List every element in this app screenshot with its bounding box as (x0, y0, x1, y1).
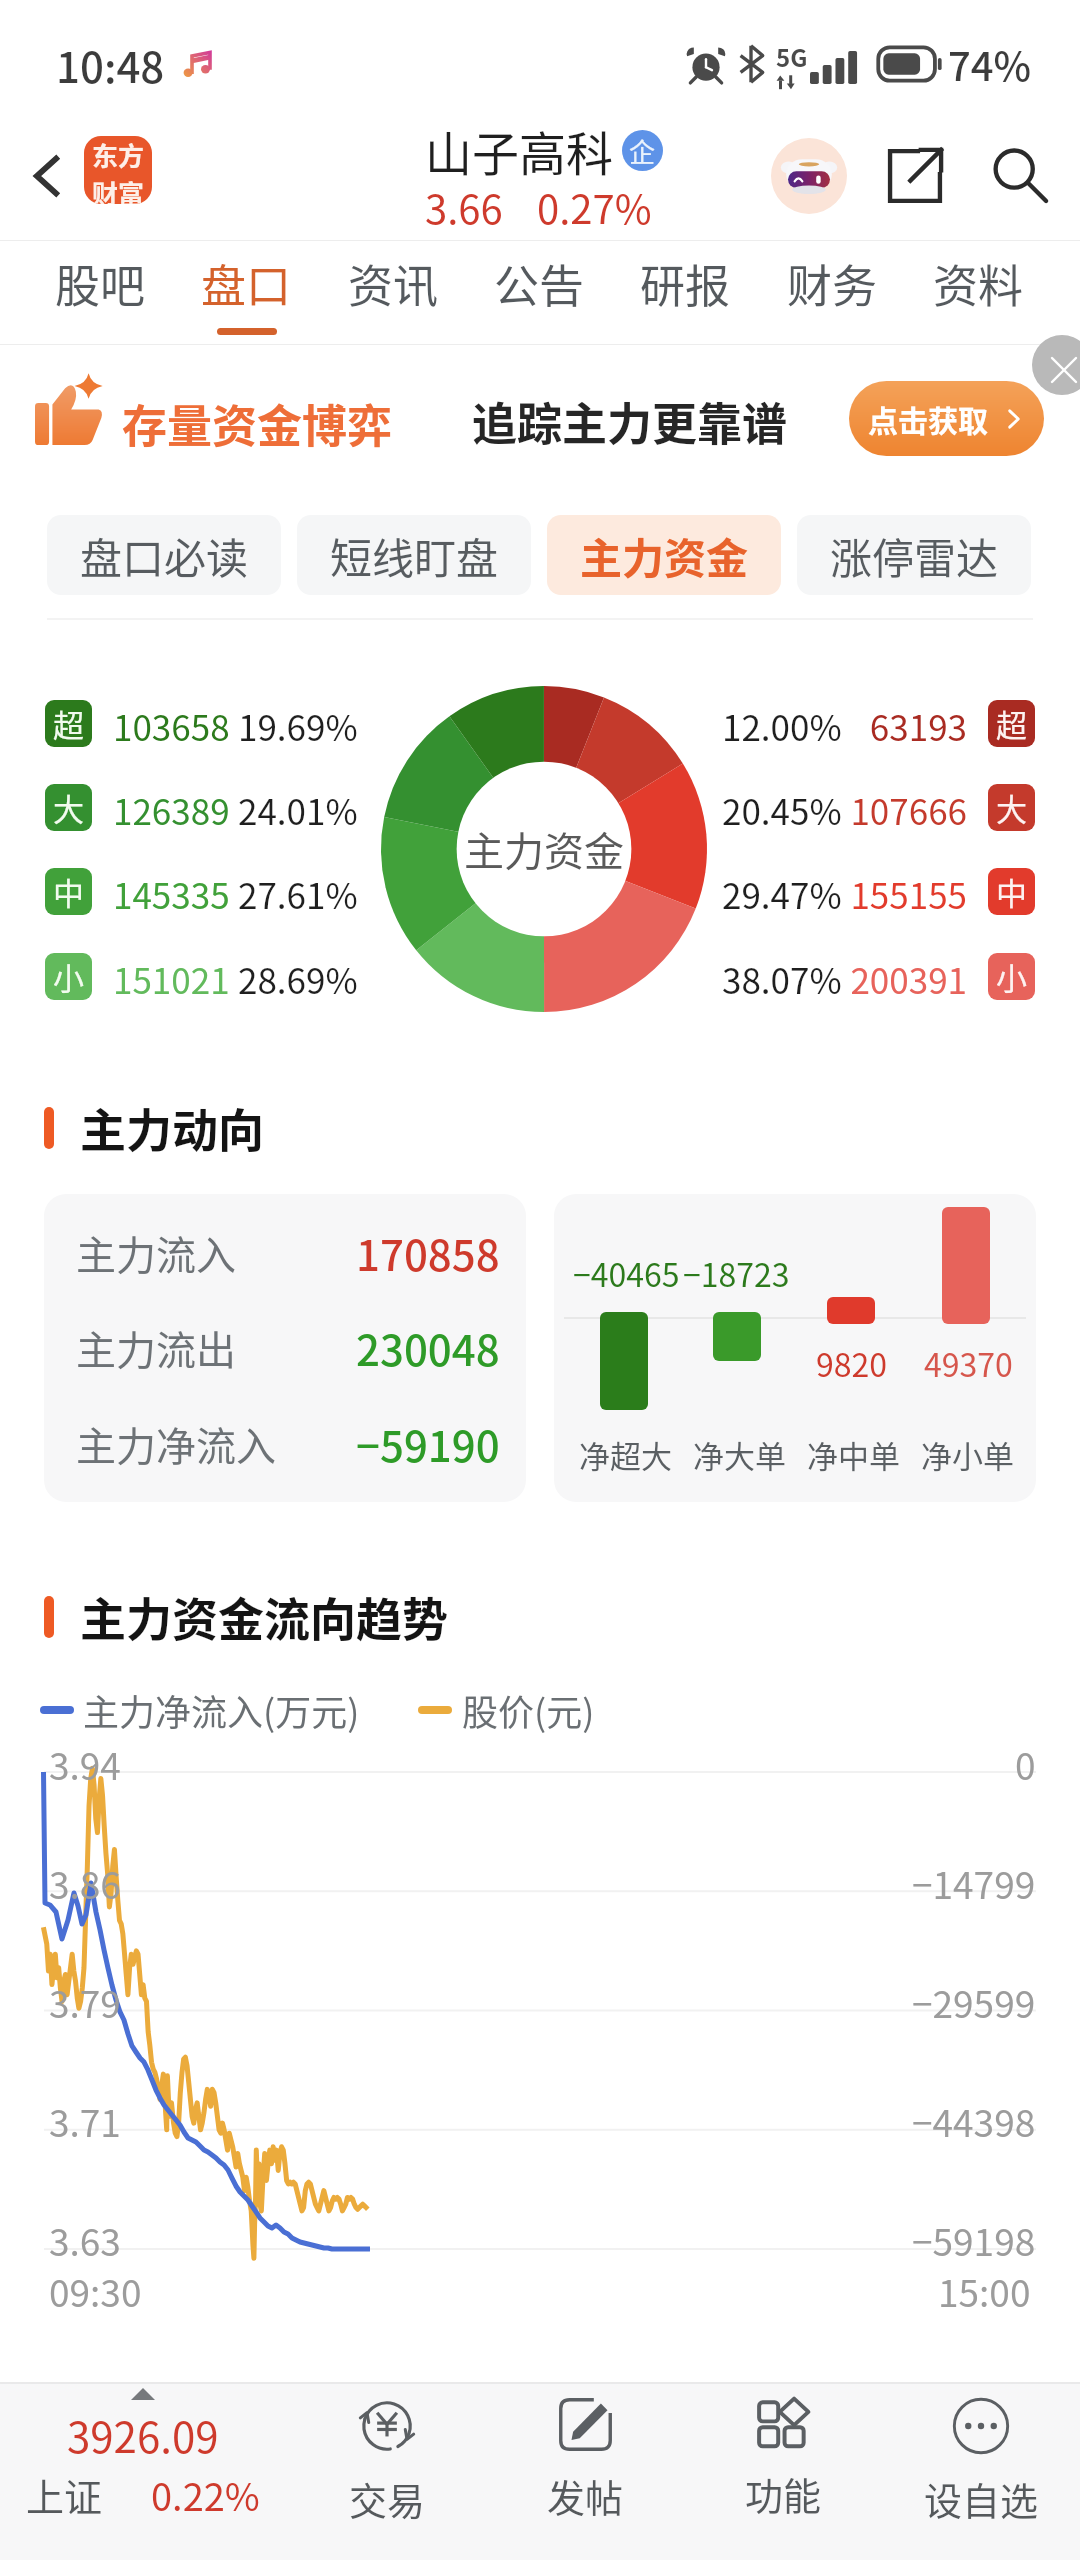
button[interactable]: Back (14, 110, 78, 241)
staticText: 主力资金流向趋势 (80, 1583, 448, 1650)
staticText: 涨停雷达 (830, 525, 999, 586)
staticText: 12.00% (722, 700, 842, 747)
button[interactable]: 发帖 (486, 2382, 684, 2560)
staticText: 09:30 (49, 2264, 142, 2318)
staticText: 主力净流入 (76, 1415, 276, 1473)
button[interactable]: 3926.09 (0, 2388, 286, 2560)
staticText: 107666 (843, 784, 967, 831)
staticText: 20.45% (722, 784, 842, 831)
staticText: 9820 (816, 1340, 888, 1386)
staticText: 大 (53, 785, 84, 830)
staticText: 3.79 (49, 1975, 121, 2029)
staticText: −40465 (573, 1250, 680, 1296)
button[interactable]: Close ad (1032, 335, 1080, 395)
staticText: 3.94 (49, 1737, 121, 1791)
staticText: 74% (948, 35, 1032, 93)
staticText: 3.71 (49, 2094, 121, 2148)
staticText: 净大单 (693, 1432, 786, 1477)
button[interactable]: East Money (84, 136, 152, 204)
staticText: 功能 (745, 2466, 822, 2521)
staticText: 主力流出 (76, 1319, 236, 1377)
button[interactable]: 盘口 (201, 241, 292, 345)
button[interactable]: 12.00% (0, 700, 1035, 747)
staticText: 38.07% (722, 953, 842, 1000)
staticText: 0.27% (537, 178, 652, 236)
staticText: 资讯 (348, 251, 439, 316)
button[interactable]: 短线盯盘 (297, 515, 531, 595)
staticText: 28.69% (238, 953, 358, 1000)
button[interactable]: 29.47% (0, 868, 1035, 915)
staticText: 上证 (26, 2467, 103, 2522)
button[interactable]: 20.45% (0, 784, 1035, 831)
staticText: 29.47% (722, 868, 842, 915)
button[interactable]: 设自选 (882, 2382, 1080, 2560)
staticText: 存量资金博弈 (122, 391, 393, 456)
button[interactable]: 中 (45, 868, 358, 915)
staticText: 东方 (92, 136, 145, 174)
staticText: 盘口 (201, 251, 292, 316)
staticText: 155155 (843, 868, 967, 915)
staticText: 49370 (924, 1340, 1013, 1386)
staticText: 3.86 (49, 1856, 121, 1910)
staticText: −29599 (912, 1975, 1036, 2029)
staticText: 中 (996, 869, 1027, 914)
staticText: 资料 (933, 251, 1024, 316)
button[interactable]: 涨停雷达 (797, 515, 1031, 595)
button[interactable]: 点击获取 (849, 381, 1044, 456)
staticText: 山子高科 (425, 116, 613, 184)
staticText: 0.22% (151, 2467, 260, 2522)
staticText: 5G (776, 39, 808, 74)
staticText: 超 (53, 701, 84, 746)
staticText: −59190 (356, 1413, 500, 1474)
button[interactable]: Share (882, 143, 948, 209)
button[interactable]: 38.07% (0, 953, 1035, 1000)
button[interactable]: 资料 (933, 241, 1024, 345)
staticText: −18723 (683, 1250, 790, 1296)
staticText: 170858 (356, 1222, 500, 1283)
staticText: 财富 (92, 174, 145, 204)
staticText: 3.66 (425, 178, 503, 236)
staticText: 交易 (349, 2471, 426, 2526)
staticText: 145335 (113, 868, 238, 915)
staticText: 3.63 (49, 2213, 121, 2267)
staticText: 19.69% (238, 700, 358, 747)
staticText: 财务 (787, 251, 878, 316)
staticText: 主力动向 (80, 1094, 264, 1161)
staticText: 63193 (843, 700, 967, 747)
staticText: 主力流入 (76, 1224, 236, 1282)
staticText: 103658 (113, 700, 238, 747)
staticText: 净小单 (921, 1432, 1014, 1477)
staticText: 3926.09 (67, 2404, 219, 2465)
button[interactable]: 存量资金博弈 广告 (0, 345, 1080, 475)
staticText: 超 (996, 701, 1027, 746)
button[interactable]: 超 (45, 700, 358, 747)
staticText: 盘口必读 (80, 525, 249, 586)
staticText: 大 (996, 785, 1027, 830)
button[interactable]: 主力资金 (547, 515, 781, 595)
staticText: 126389 (113, 784, 238, 831)
staticText: 0 (1015, 1737, 1036, 1791)
button[interactable]: 盘口必读 (47, 515, 281, 595)
button[interactable]: 功能 (684, 2382, 882, 2560)
button[interactable]: 大 (45, 784, 358, 831)
staticText: 27.61% (238, 868, 358, 915)
staticText: 主力资金 (464, 820, 624, 878)
button[interactable]: 财务 (787, 241, 878, 345)
staticText: 小 (53, 954, 84, 999)
button[interactable]: 公告 (494, 241, 585, 345)
staticText: 151021 (113, 953, 238, 1000)
staticText: 中 (53, 869, 84, 914)
staticText: −14799 (912, 1856, 1036, 1910)
staticText: 企 (629, 132, 656, 170)
button[interactable]: 资讯 (348, 241, 439, 345)
button[interactable]: 研报 (640, 241, 731, 345)
button[interactable]: AI assistant (771, 138, 847, 214)
staticText: 10:48 (56, 34, 165, 95)
button[interactable]: 股吧 (55, 241, 146, 345)
button[interactable]: 小 (45, 953, 358, 1000)
button[interactable]: Search (987, 143, 1053, 209)
staticText: −59198 (912, 2213, 1036, 2267)
button[interactable]: 交易 (288, 2382, 486, 2560)
staticText: 点击获取 (868, 397, 988, 440)
staticText: 短线盯盘 (330, 525, 499, 586)
